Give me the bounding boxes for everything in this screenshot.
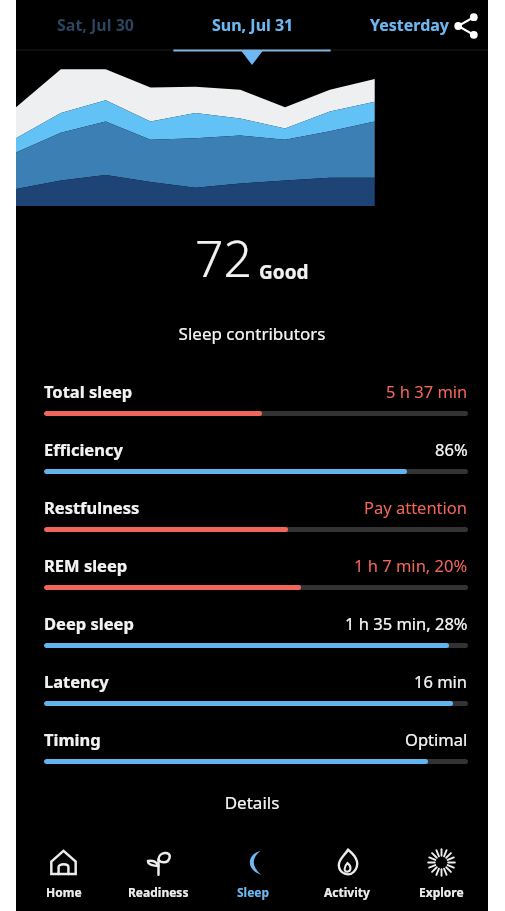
staticText: Readiness [128,884,189,900]
button[interactable]: Sat, Jul 30 [16,0,174,49]
button[interactable]: REM sleep [16,545,488,603]
staticText: Efficiency [44,438,123,460]
staticText: Yesterday [370,14,449,36]
button[interactable]: Activity [300,837,394,911]
button[interactable]: Readiness [111,837,206,911]
button[interactable]: Sleep [206,837,300,911]
staticText: 86% [435,438,468,460]
button[interactable]: Restfulness [16,487,488,545]
button[interactable]: Share [444,4,488,48]
staticText: Sun, Jul 31 [212,14,294,36]
button[interactable]: Timing [16,719,488,777]
staticText: 5 h 37 min [386,380,468,402]
button[interactable]: Deep sleep [16,603,488,661]
staticText: Optimal [405,728,468,750]
staticText: Pay attention [364,496,468,518]
button[interactable]: Efficiency [16,429,488,487]
staticText: Sleep [237,884,270,900]
staticText: 1 h 7 min, 20% [354,554,468,576]
button[interactable]: Latency [16,661,488,719]
staticText: Home [46,884,82,900]
staticText: Restfulness [44,496,140,518]
button[interactable]: Yesterday [331,0,488,49]
button[interactable]: Home [16,837,111,911]
staticText: Total sleep [44,380,133,402]
staticText: Sat, Jul 30 [57,14,134,36]
staticText: Sleep contributors [16,322,488,345]
staticText: 72 [195,224,253,292]
staticText: Good [259,259,309,285]
staticText: Latency [44,670,109,692]
staticText: Explore [419,884,464,900]
staticText: Activity [324,884,370,900]
staticText: Details [16,791,488,814]
staticText: 1 h 35 min, 28% [345,612,468,634]
staticText: REM sleep [44,554,128,576]
button[interactable]: Sun, Jul 31 [174,0,331,49]
button[interactable]: Total sleep [16,371,488,429]
button[interactable]: Explore [394,837,488,911]
staticText: 16 min [414,670,468,692]
staticText: Deep sleep [44,612,134,634]
staticText: Timing [44,728,101,750]
